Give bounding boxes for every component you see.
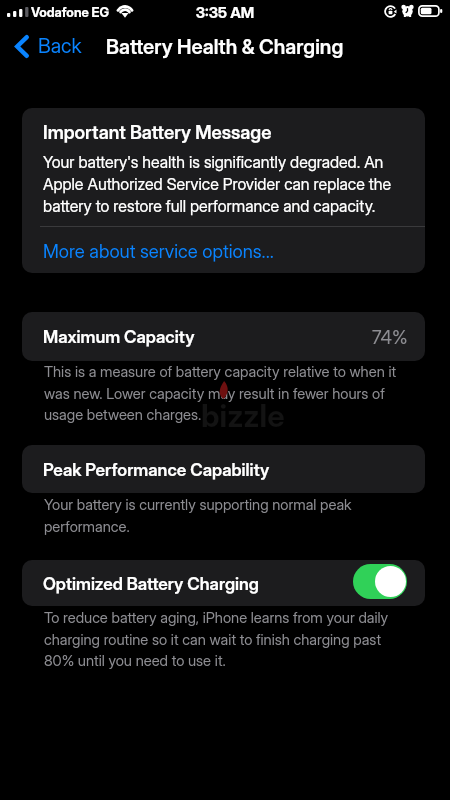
button[interactable]: Back xyxy=(0,28,82,64)
other: Back xyxy=(15,35,29,58)
staticText: Optimized Battery Charging xyxy=(43,573,259,594)
staticText: Your battery is currently supporting nor… xyxy=(44,496,400,535)
staticText: Back xyxy=(38,34,82,58)
button[interactable]: Peak Performance Capability xyxy=(22,445,425,493)
staticText: Vodafone EG xyxy=(31,4,110,20)
button[interactable]: More about service options... xyxy=(22,227,425,273)
staticText: This is a measure of battery capacity re… xyxy=(44,363,400,423)
staticText: bizzle xyxy=(201,397,285,435)
staticText: 74% xyxy=(372,326,408,348)
staticText: Maximum Capacity xyxy=(43,326,195,347)
button[interactable]: Optimized Battery Charging toggle xyxy=(353,564,407,599)
staticText: Your battery's health is significantly d… xyxy=(43,152,395,215)
staticText: 3:35 AM xyxy=(0,3,450,21)
staticText: Battery Health & Charging xyxy=(106,34,344,58)
staticText: More about service options... xyxy=(43,240,274,262)
staticText: To reduce battery aging, iPhone learns f… xyxy=(44,609,400,669)
staticText: Important Battery Message xyxy=(43,121,272,143)
button[interactable]: Maximum Capacity xyxy=(22,312,425,361)
staticText: Peak Performance Capability xyxy=(43,459,270,480)
